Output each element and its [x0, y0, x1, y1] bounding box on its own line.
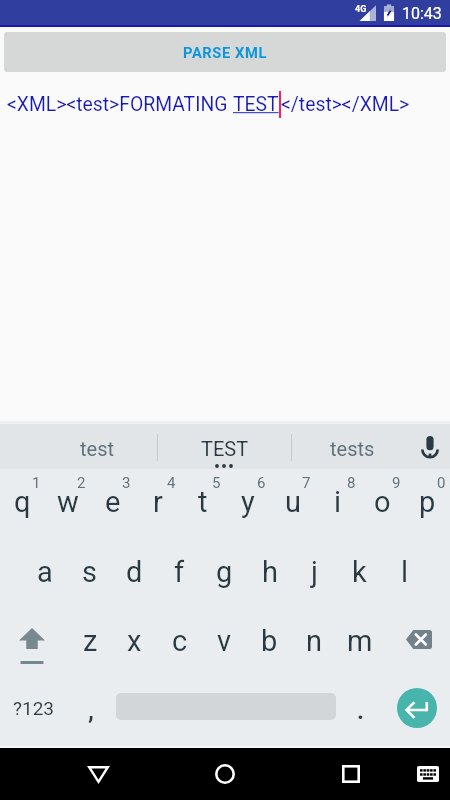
button[interactable]: l	[382, 537, 427, 605]
staticText: j	[311, 555, 318, 589]
button[interactable]: Enter	[397, 688, 437, 728]
staticText: 0	[437, 474, 446, 492]
button[interactable]: b	[247, 606, 292, 674]
button[interactable]: .	[338, 673, 383, 739]
staticText: <XML><test>FORMATING	[7, 93, 233, 116]
staticText: r	[153, 485, 163, 519]
staticText: 7	[302, 474, 311, 492]
staticText: h	[262, 555, 278, 589]
staticText: PARSE XML	[183, 44, 268, 61]
button[interactable]: 4	[135, 469, 180, 537]
staticText: m	[347, 624, 373, 658]
button[interactable]: 8	[315, 469, 360, 537]
staticText: l	[401, 555, 409, 589]
staticText: g	[216, 555, 233, 589]
staticText: w	[57, 485, 79, 519]
staticText: tests	[330, 437, 375, 460]
staticText: q	[14, 485, 31, 519]
button[interactable]: Switch keyboard	[405, 748, 450, 800]
button[interactable]: g	[202, 537, 247, 605]
staticText: p	[419, 485, 436, 519]
button[interactable]: test	[33, 424, 161, 469]
staticText: c	[172, 624, 188, 658]
button[interactable]: 2	[45, 469, 90, 537]
staticText: n	[306, 624, 323, 658]
button[interactable]: d	[112, 537, 157, 605]
staticText: ,	[88, 697, 94, 725]
staticText: 8	[347, 474, 356, 492]
staticText: .	[357, 697, 364, 725]
button[interactable]: v	[202, 606, 247, 674]
button[interactable]: 7	[270, 469, 315, 537]
staticText: 10:43	[402, 4, 442, 23]
button[interactable]: x	[112, 606, 157, 674]
staticText: b	[261, 624, 278, 658]
button[interactable]: 1	[0, 469, 45, 537]
button[interactable]: ?123	[0, 673, 67, 739]
staticText: v	[217, 624, 232, 658]
button[interactable]: 3	[90, 469, 135, 537]
button[interactable]: Back	[73, 748, 123, 800]
staticText: ?123	[13, 697, 55, 719]
button[interactable]: n	[292, 606, 337, 674]
staticText: k	[352, 555, 367, 589]
button[interactable]: c	[157, 606, 202, 674]
staticText: TEST	[201, 437, 249, 460]
staticText: y	[241, 485, 255, 519]
staticText: TEST	[233, 93, 279, 116]
staticText: </test></XML>	[281, 93, 410, 116]
button[interactable]: a	[23, 537, 67, 605]
staticText: 4	[167, 474, 176, 492]
staticText: test	[80, 437, 115, 460]
button[interactable]: Shift	[0, 606, 68, 674]
button[interactable]: j	[292, 537, 337, 605]
staticText: a	[37, 555, 53, 589]
button[interactable]: 5	[180, 469, 225, 537]
staticText: s	[82, 555, 97, 589]
button[interactable]: PARSE XML	[4, 32, 446, 72]
staticText: 3	[122, 474, 131, 492]
staticText: 9	[392, 474, 401, 492]
button[interactable]: Backspace	[382, 606, 450, 674]
button[interactable]: 6	[225, 469, 270, 537]
staticText: 4G	[355, 4, 367, 15]
staticText: o	[374, 485, 391, 519]
button[interactable]: h	[247, 537, 292, 605]
button[interactable]: Recents	[326, 748, 376, 800]
staticText: 5	[212, 474, 221, 492]
button[interactable]: Home	[200, 748, 250, 800]
staticText: e	[105, 485, 121, 519]
button[interactable]: ,	[67, 673, 112, 739]
button[interactable]: z	[68, 606, 112, 674]
button[interactable]: tests	[288, 424, 416, 469]
staticText: t	[198, 485, 208, 519]
staticText: f	[174, 555, 185, 589]
button[interactable]: f	[157, 537, 202, 605]
button[interactable]: Voice input	[410, 424, 450, 469]
staticText: i	[334, 485, 342, 519]
button[interactable]: s	[67, 537, 112, 605]
staticText: 6	[257, 474, 266, 492]
staticText: 1	[32, 474, 41, 492]
staticText: 2	[77, 474, 86, 492]
button[interactable]: 9	[360, 469, 405, 537]
button[interactable]: k	[337, 537, 382, 605]
staticText: u	[285, 485, 301, 519]
staticText: x	[127, 624, 142, 658]
button[interactable]: 0	[405, 469, 450, 537]
button[interactable]: m	[337, 606, 382, 674]
staticText: z	[83, 624, 98, 658]
staticText: d	[126, 555, 143, 589]
button[interactable]: TEST	[161, 424, 289, 469]
